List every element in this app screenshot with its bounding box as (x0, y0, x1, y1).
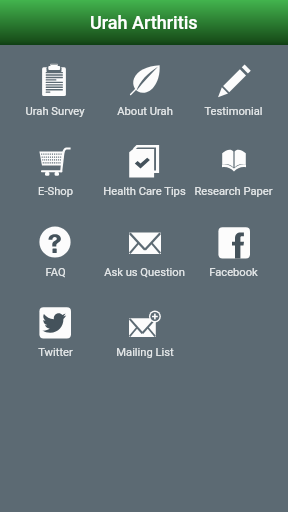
staticText: Urah Survey (25, 105, 85, 118)
button[interactable]: About Urah (100, 45, 189, 125)
button[interactable]: Health Care Tips (100, 125, 189, 206)
button[interactable]: FAQ (10, 206, 100, 286)
staticText: Mailing List (116, 346, 174, 359)
button[interactable]: Facebook (189, 206, 278, 286)
button[interactable]: Testimonial (189, 45, 278, 125)
staticText: Health Care Tips (103, 185, 186, 198)
button[interactable]: Twitter (10, 286, 100, 367)
staticText: FAQ (45, 266, 66, 279)
staticText: Research Paper (194, 185, 273, 198)
staticText: Twitter (38, 346, 73, 359)
button[interactable]: Mailing List (100, 286, 189, 367)
staticText: Urah Arthritis (90, 12, 198, 33)
staticText: E-Shop (38, 185, 73, 198)
button[interactable]: Urah Survey (10, 45, 100, 125)
button[interactable]: Research Paper (189, 125, 278, 206)
staticText: About Urah (117, 105, 173, 118)
button[interactable]: Ask us Question (100, 206, 189, 286)
staticText: Testimonial (204, 105, 263, 118)
staticText: Ask us Question (104, 266, 185, 279)
button[interactable]: E-Shop (10, 125, 100, 206)
staticText: Facebook (209, 266, 258, 279)
